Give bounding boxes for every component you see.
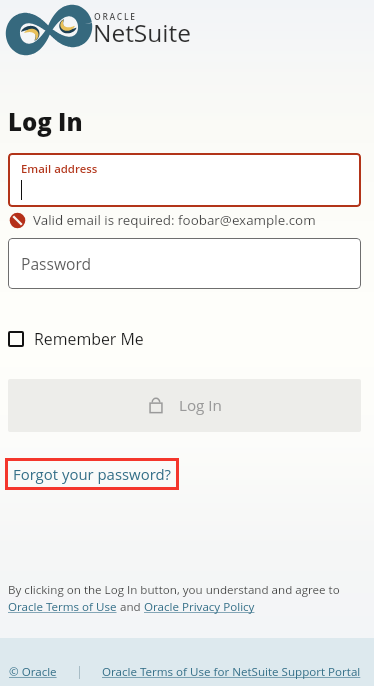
staticText: NetSuite: [93, 16, 191, 49]
button[interactable]: Oracle Terms of Use: [8, 599, 117, 615]
button[interactable]: Oracle Terms of Use for NetSuite Support…: [102, 664, 361, 680]
button[interactable]: Oracle Privacy Policy: [144, 599, 255, 615]
staticText: Password: [21, 253, 92, 274]
staticText: Log In: [8, 105, 83, 138]
button[interactable]: Email address: [8, 153, 361, 207]
button[interactable]: Remember Me: [8, 328, 144, 350]
button[interactable]: Log In: [8, 379, 361, 432]
button[interactable]: Password: [8, 238, 361, 289]
other: Error: [9, 212, 26, 229]
staticText: Log In: [179, 395, 222, 416]
staticText: Valid email is required: foobar@example.…: [33, 211, 316, 229]
staticText: Forgot your password?: [13, 464, 171, 484]
staticText: Email address: [21, 161, 98, 177]
staticText: Remember Me: [34, 328, 144, 350]
staticText: and: [117, 599, 144, 615]
staticText: ORACLE: [94, 11, 137, 23]
staticText: By clicking on the Log In button, you un…: [8, 582, 340, 598]
button[interactable]: © Oracle: [9, 664, 57, 680]
button[interactable]: Forgot your password?: [13, 464, 171, 484]
